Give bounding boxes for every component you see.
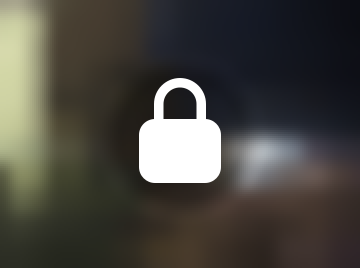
button[interactable]: Locked xyxy=(0,0,360,268)
